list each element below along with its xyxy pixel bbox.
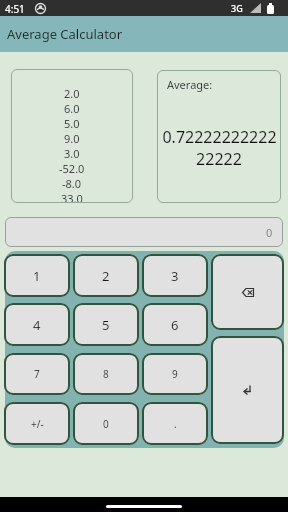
staticText: 3.0 <box>64 146 80 161</box>
button[interactable] <box>211 254 284 330</box>
staticText: 3G <box>231 2 243 14</box>
button[interactable]: 1 <box>4 254 70 297</box>
staticText: 22222 <box>196 148 242 170</box>
staticText: Average: <box>167 77 213 92</box>
staticText: 3 <box>171 267 179 285</box>
staticText: +/- <box>31 417 44 431</box>
staticText: 2.0 <box>64 86 80 101</box>
button[interactable]: 2 <box>73 254 139 297</box>
button[interactable]: 6 <box>142 303 208 346</box>
staticText: 9 <box>172 367 178 381</box>
staticText: 7 <box>34 367 40 381</box>
staticText: 33.0 <box>61 191 83 206</box>
button[interactable]: 7 <box>4 353 70 395</box>
button[interactable]: 8 <box>73 353 139 395</box>
button[interactable]: 9 <box>142 353 208 395</box>
staticText: -8.0 <box>62 176 82 191</box>
button[interactable]: . <box>142 402 208 445</box>
button[interactable]: 3 <box>142 254 208 297</box>
staticText: 6 <box>171 316 179 334</box>
staticText: 0 <box>103 417 109 431</box>
staticText: . <box>174 417 177 431</box>
button[interactable]: 5 <box>73 303 139 346</box>
staticText: 5 <box>102 316 110 334</box>
staticText: 4:51 <box>5 2 25 16</box>
staticText: 4 <box>33 316 41 334</box>
staticText: 1 <box>33 267 41 285</box>
button[interactable]: 0 <box>73 402 139 445</box>
button[interactable]: 4 <box>4 303 70 346</box>
staticText: 0 <box>266 225 273 240</box>
staticText: Average Calculator <box>7 25 123 43</box>
staticText: 8 <box>103 367 109 381</box>
staticText: 2 <box>102 267 110 285</box>
staticText: 0.72222222222 <box>162 126 277 148</box>
staticText: 6.0 <box>64 101 80 116</box>
staticText: -52.0 <box>59 161 85 176</box>
button[interactable]: 0 <box>5 217 283 247</box>
button[interactable]: +/- <box>4 402 70 445</box>
button[interactable] <box>211 336 284 444</box>
staticText: 9.0 <box>64 131 80 146</box>
staticText: 5.0 <box>64 116 80 131</box>
